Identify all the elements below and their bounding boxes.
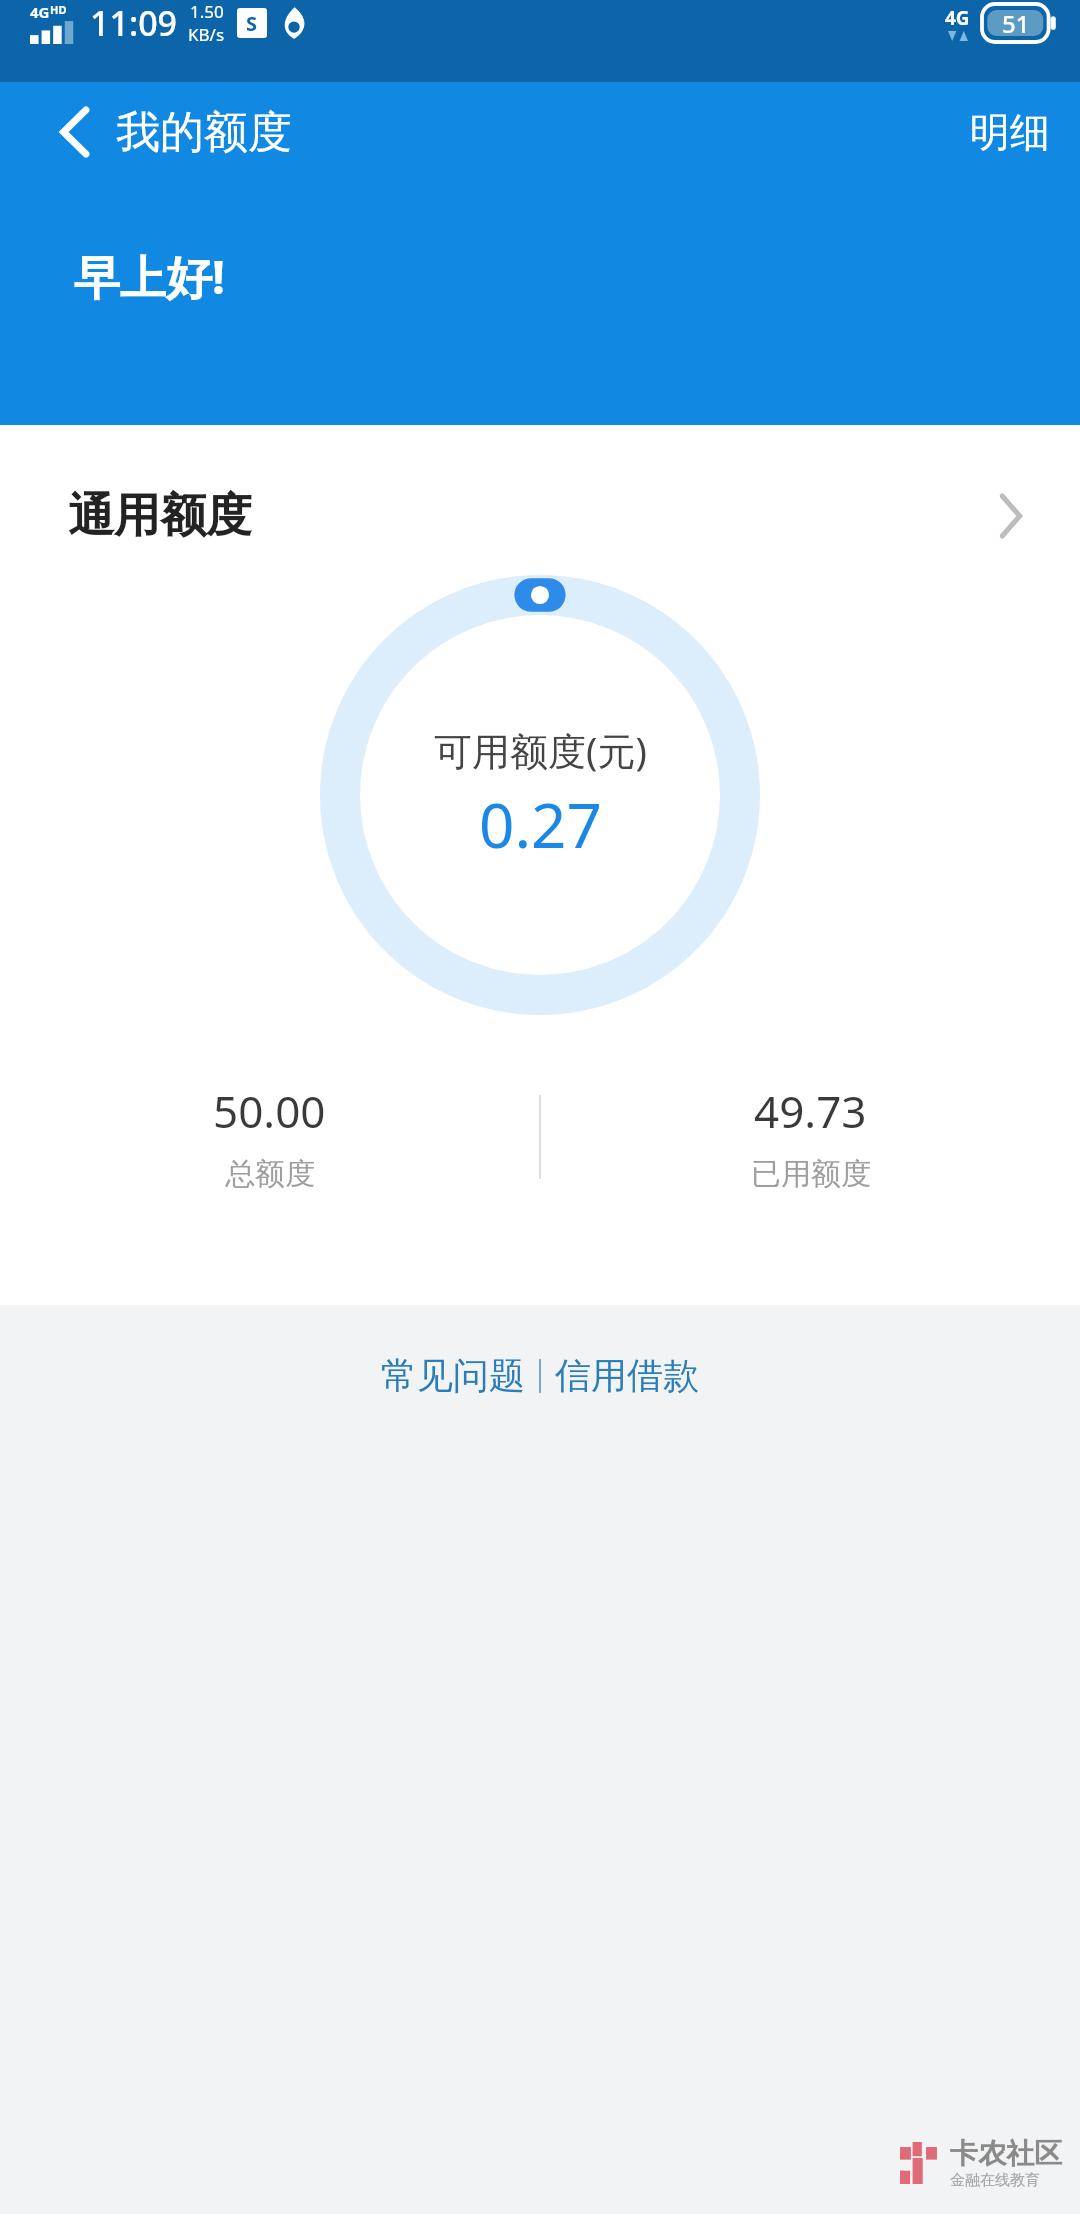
staticText: 可用额度(元) [434, 724, 647, 776]
staticText: 信用借款 [555, 1353, 699, 1398]
staticText: 11:09 [90, 0, 178, 46]
staticText: HD [50, 2, 67, 17]
staticText: 明细 [970, 107, 1050, 157]
staticText: 0.27 [479, 782, 603, 866]
button[interactable]: 信用借款 [541, 1341, 713, 1410]
staticText: 1.50 [190, 0, 224, 23]
staticText: 已用额度 [751, 1155, 871, 1193]
staticText: 51 [1002, 7, 1030, 40]
staticText: 50.00 [213, 1081, 326, 1141]
staticText: 我的额度 [116, 105, 292, 160]
staticText: 总额度 [225, 1155, 315, 1193]
staticText: 常见问题 [381, 1353, 525, 1398]
staticText: 金融在线教育 [950, 2171, 1040, 2190]
button[interactable]: 常见问题 [367, 1341, 539, 1410]
staticText: 早上好! [74, 245, 225, 308]
button[interactable]: 明细 [940, 91, 1080, 173]
staticText: 通用额度 [68, 487, 252, 545]
staticText: 49.73 [754, 1081, 867, 1141]
staticText: 卡农社区 [950, 2136, 1062, 2171]
staticText: S [246, 10, 258, 37]
button[interactable]: 通用额度 [0, 487, 1080, 545]
staticText: 4G [945, 5, 970, 31]
staticText: KB/s [188, 23, 225, 46]
staticText: 4G [30, 2, 50, 22]
button[interactable]: Back [40, 97, 110, 167]
